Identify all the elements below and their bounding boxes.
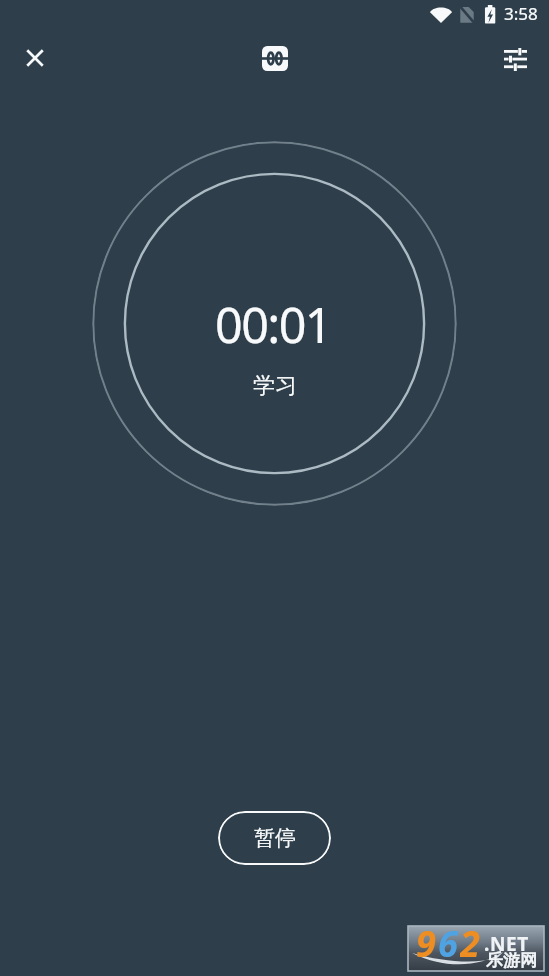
staticText: 2 bbox=[460, 919, 482, 964]
staticText: .NET bbox=[484, 931, 529, 957]
button[interactable]: Close bbox=[12, 35, 57, 80]
button[interactable]: Settings bbox=[493, 37, 537, 81]
staticText: 6 bbox=[438, 919, 460, 964]
staticText: 9 bbox=[416, 919, 438, 964]
staticText: 学习 bbox=[253, 372, 297, 400]
staticText: 暂停 bbox=[254, 825, 296, 851]
staticText: 乐游网 bbox=[486, 950, 537, 971]
button[interactable]: 暂停 bbox=[218, 811, 331, 865]
staticText: 3:58 bbox=[504, 2, 538, 25]
button[interactable]: Timer bbox=[92, 141, 457, 506]
staticText: 00:01 bbox=[215, 291, 331, 357]
button[interactable]: Timer mode bbox=[253, 36, 297, 80]
